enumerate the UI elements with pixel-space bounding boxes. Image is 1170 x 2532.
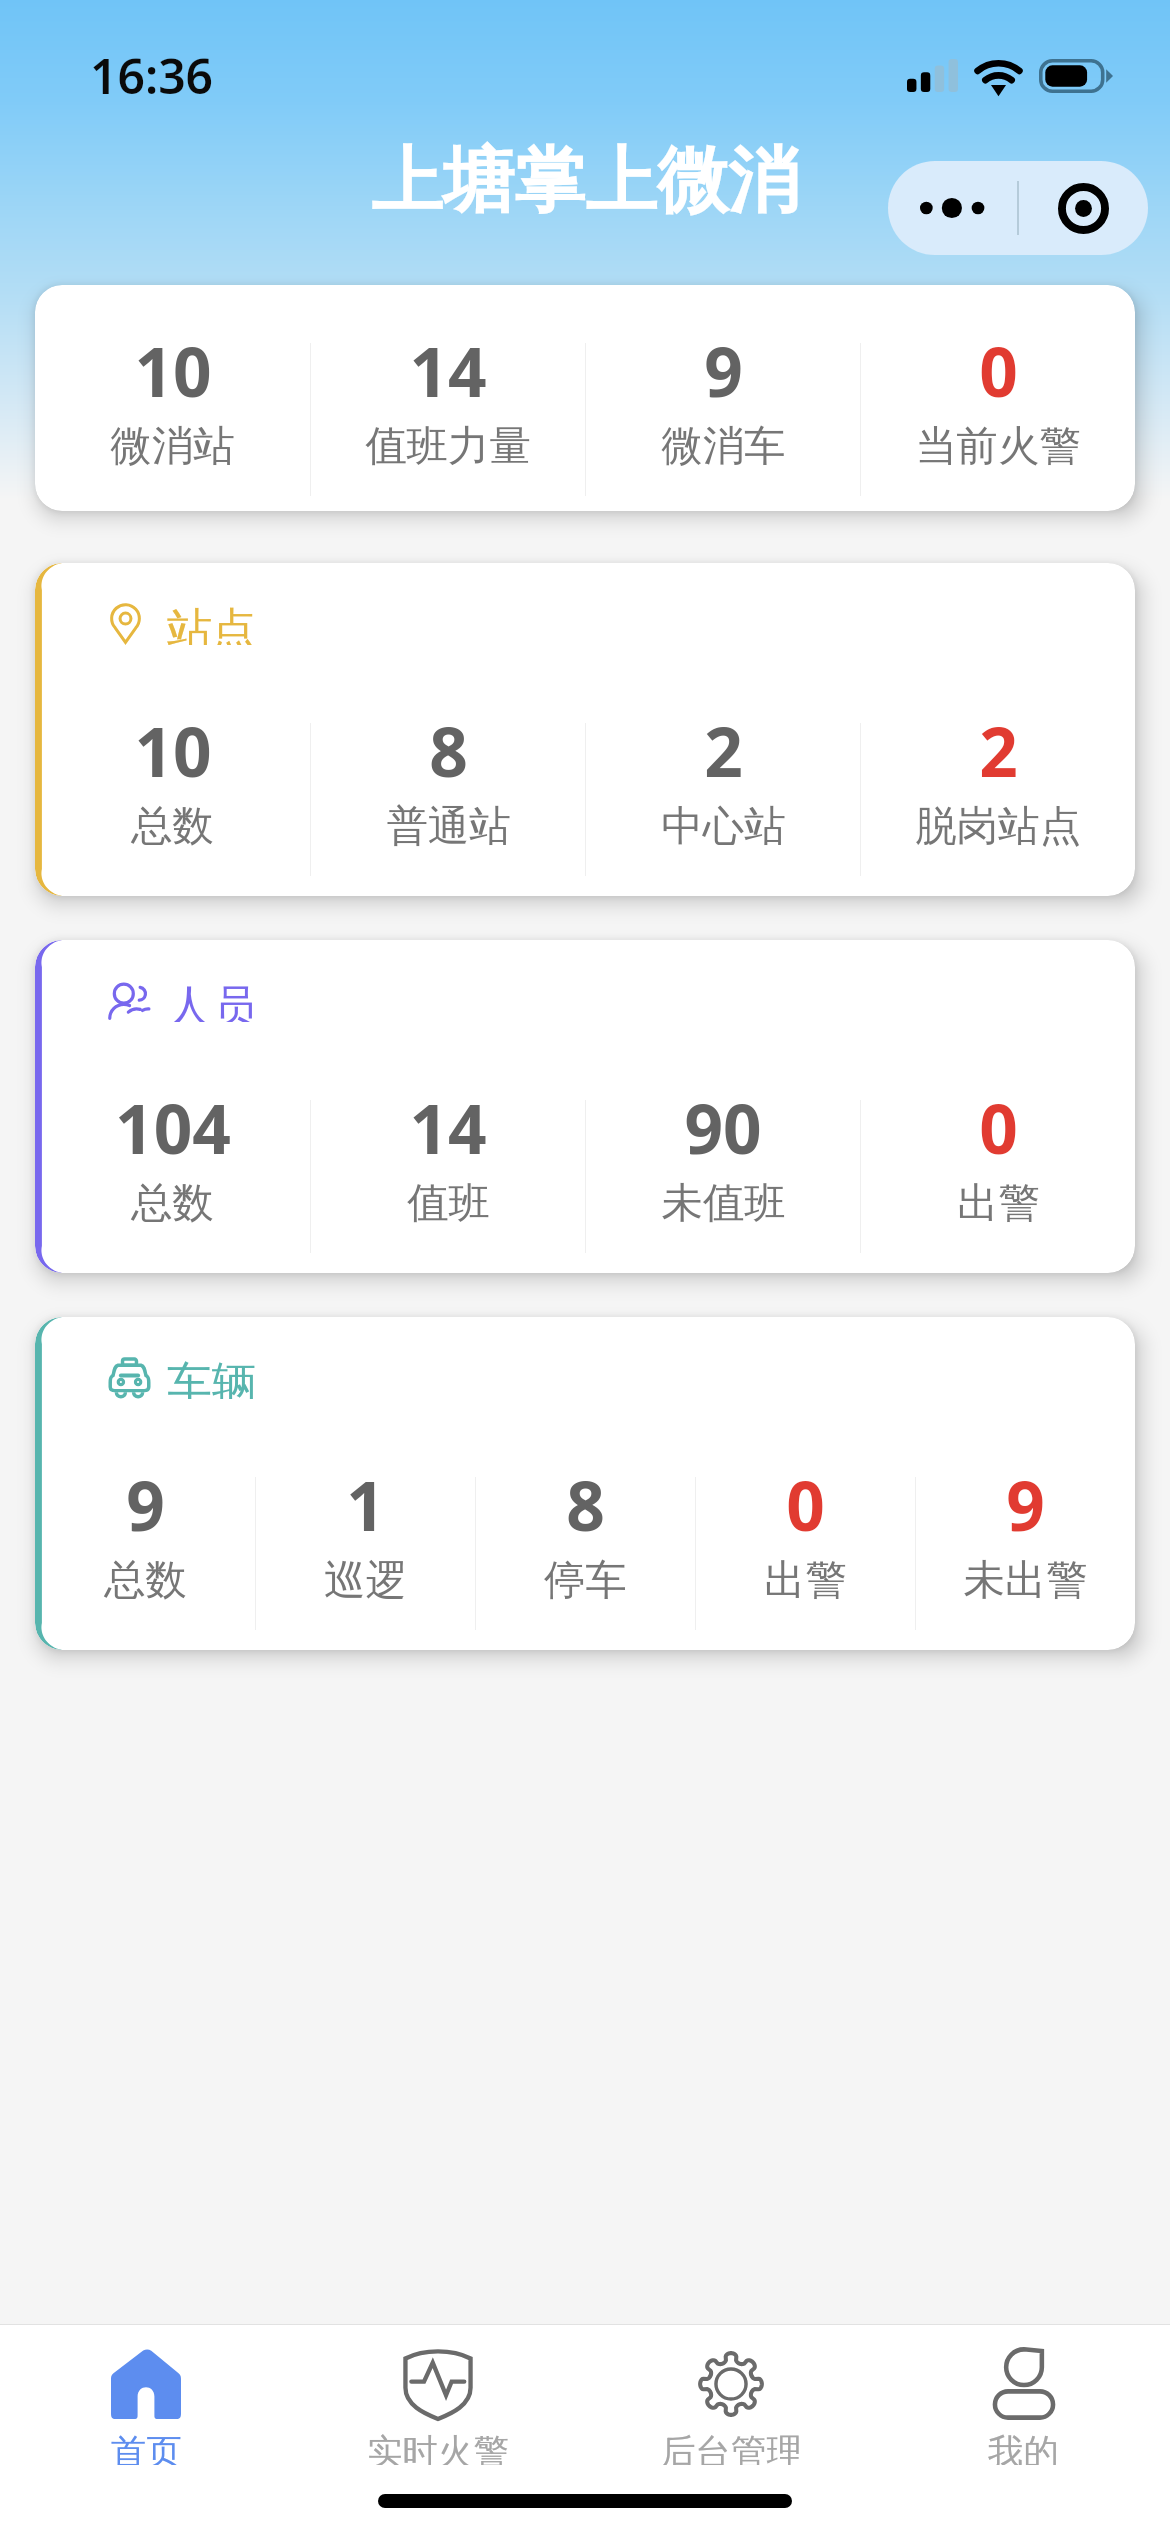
staticText: 中心站 — [661, 800, 786, 852]
staticText: 实时火警 — [367, 2430, 509, 2465]
staticText: 9 — [704, 325, 743, 417]
staticText: 总数 — [131, 800, 214, 852]
staticText: 10 — [134, 325, 212, 417]
staticText: 8 — [566, 1459, 605, 1551]
staticText: 后台管理 — [660, 2430, 802, 2465]
staticText: 2 — [704, 705, 743, 797]
button[interactable]: 0 — [861, 325, 1135, 472]
staticText: 总数 — [104, 1554, 187, 1606]
staticText: 9 — [126, 1459, 165, 1551]
staticText: 90 — [684, 1082, 762, 1174]
button[interactable]: 8 — [476, 1459, 695, 1606]
staticText: 上塘掌上微消 — [371, 136, 800, 226]
staticText: 0 — [979, 1082, 1018, 1174]
staticText: 1 — [346, 1459, 385, 1551]
staticText: 普通站 — [386, 800, 511, 852]
button[interactable]: 10 — [35, 325, 310, 472]
staticText: 微消站 — [110, 420, 235, 472]
staticText: 人员 — [167, 979, 257, 1022]
staticText: 出警 — [764, 1554, 847, 1606]
staticText: 未值班 — [661, 1177, 786, 1229]
button[interactable]: 2 — [586, 705, 860, 852]
button[interactable]: Menu — [888, 161, 1148, 255]
button[interactable]: 90 — [586, 1082, 860, 1229]
staticText: 0 — [979, 325, 1018, 417]
button[interactable]: 实时火警 — [292, 2325, 584, 2465]
staticText: 我的 — [988, 2430, 1059, 2465]
staticText: 10 — [134, 705, 212, 797]
staticText: 值班 — [407, 1177, 490, 1229]
button[interactable]: 我的 — [877, 2325, 1170, 2465]
staticText: 0 — [786, 1459, 825, 1551]
button[interactable]: 0 — [696, 1459, 915, 1606]
staticText: 当前火警 — [915, 420, 1081, 472]
staticText: 首页 — [111, 2430, 182, 2465]
staticText: 总数 — [131, 1177, 214, 1229]
staticText: 2 — [979, 705, 1018, 797]
staticText: 停车 — [544, 1554, 627, 1606]
staticText: 8 — [429, 705, 468, 797]
staticText: 脱岗站点 — [915, 800, 1081, 852]
button[interactable]: 后台管理 — [584, 2325, 877, 2465]
button[interactable]: 10 — [35, 705, 310, 852]
staticText: 未出警 — [963, 1554, 1088, 1606]
staticText: 104 — [115, 1082, 231, 1174]
staticText: 值班力量 — [365, 420, 531, 472]
staticText: 巡逻 — [324, 1554, 407, 1606]
button[interactable]: 9 — [916, 1459, 1135, 1606]
button[interactable]: 2 — [861, 705, 1135, 852]
staticText: 车辆 — [167, 1356, 257, 1399]
button[interactable]: 首页 — [0, 2325, 292, 2465]
staticText: 14 — [409, 1082, 487, 1174]
button[interactable]: 1 — [256, 1459, 475, 1606]
button[interactable]: 14 — [311, 1082, 585, 1229]
staticText: 站点 — [167, 602, 257, 645]
button[interactable]: 104 — [35, 1082, 310, 1229]
button[interactable]: 0 — [861, 1082, 1135, 1229]
staticText: 微消车 — [661, 420, 786, 472]
button[interactable]: 8 — [311, 705, 585, 852]
staticText: 9 — [1006, 1459, 1045, 1551]
button[interactable]: 9 — [586, 325, 860, 472]
button[interactable]: 9 — [35, 1459, 255, 1606]
button[interactable]: 14 — [311, 325, 585, 472]
staticText: 16:36 — [90, 43, 214, 108]
staticText: 14 — [409, 325, 487, 417]
staticText: 出警 — [957, 1177, 1040, 1229]
